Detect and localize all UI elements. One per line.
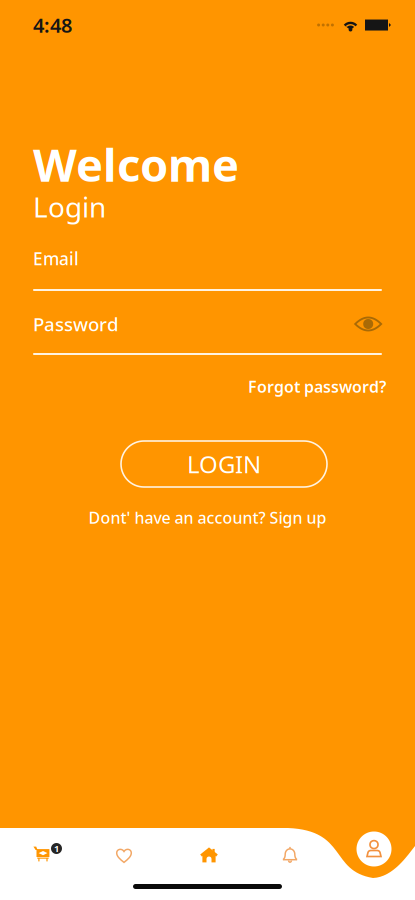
staticText: Welcome xyxy=(33,134,239,194)
staticText: 1 xyxy=(54,842,59,855)
staticText: Password xyxy=(33,312,119,336)
staticText: Dont' have an account? Sign up xyxy=(88,507,326,528)
button[interactable]: Notifications xyxy=(270,838,310,872)
button[interactable]: Cart xyxy=(23,838,63,872)
staticText: Forgot password? xyxy=(248,376,386,397)
button[interactable]: Forgot password? xyxy=(248,376,386,397)
button[interactable]: Home xyxy=(189,838,229,872)
button[interactable]: LOGIN xyxy=(121,441,327,487)
staticText: Email xyxy=(33,247,79,270)
staticText: 4:48 xyxy=(33,12,72,38)
staticText: Login xyxy=(33,188,106,225)
button[interactable]: Favorites xyxy=(104,838,144,872)
button[interactable]: Dont' have an account? Sign up xyxy=(88,507,326,528)
staticText: LOGIN xyxy=(187,448,261,480)
button[interactable]: Profile xyxy=(352,827,396,871)
button[interactable]: Show password xyxy=(354,314,382,334)
